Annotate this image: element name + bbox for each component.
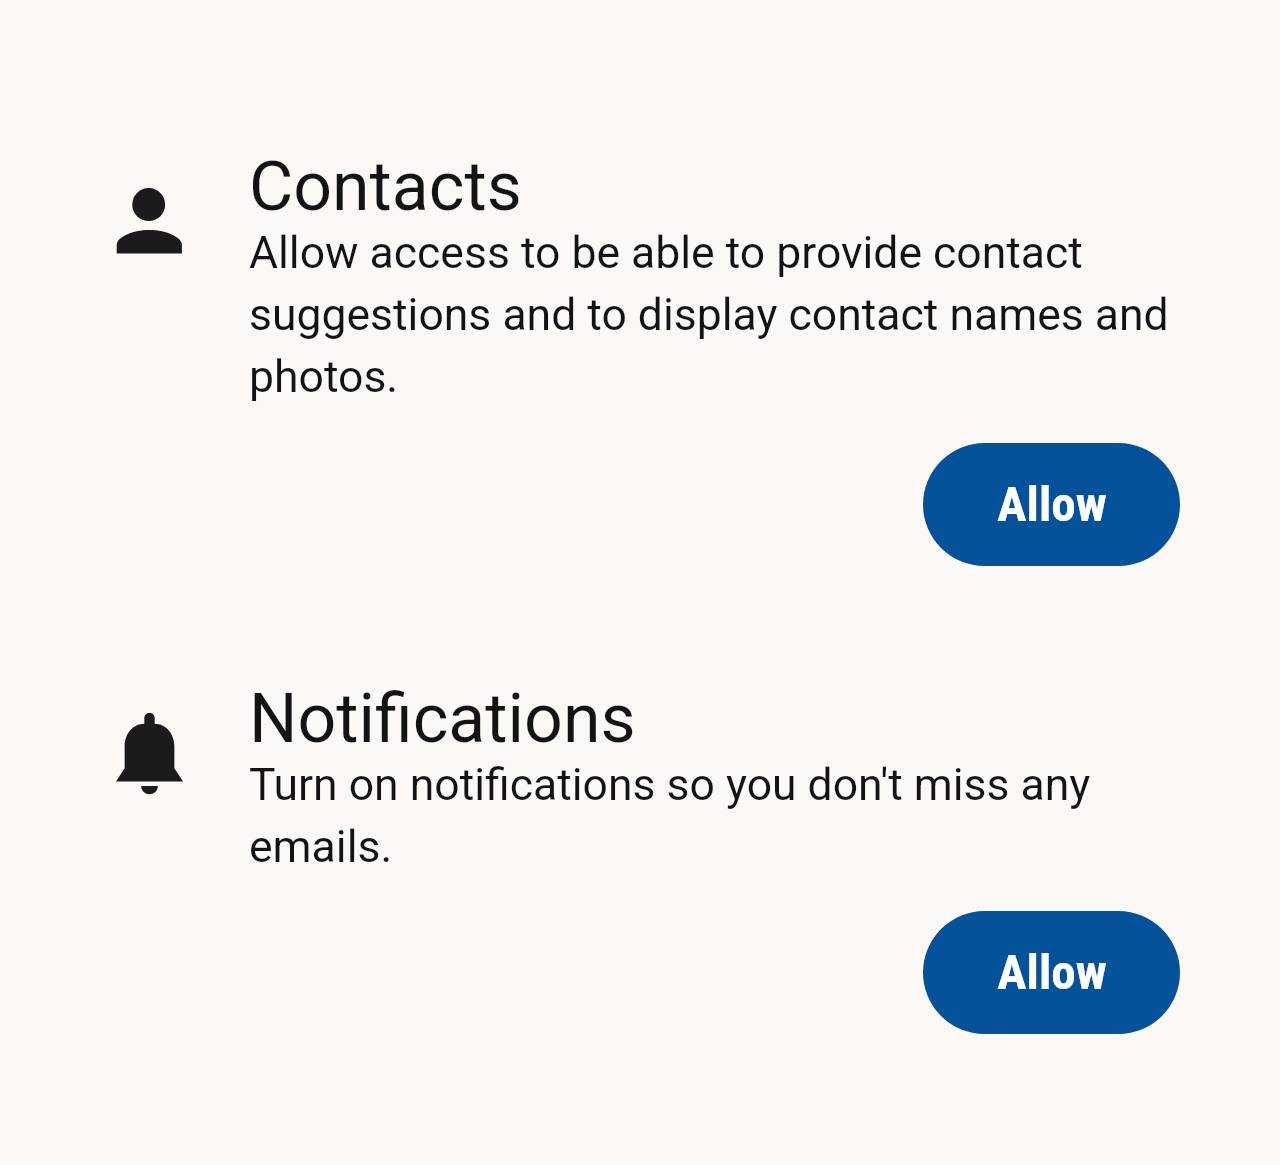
staticText: Allow	[997, 476, 1107, 533]
staticText: Allow	[997, 944, 1107, 1001]
other: Notifications permission	[116, 713, 183, 794]
other: Contacts permission	[116, 188, 183, 254]
staticText: Turn on notifications so you don't miss …	[249, 759, 1179, 875]
staticText: Contacts	[249, 147, 522, 227]
staticText: Allow access to be able to provide conta…	[249, 227, 1179, 405]
staticText: Notifications	[249, 679, 636, 759]
button[interactable]: Allow	[923, 443, 1180, 566]
button[interactable]: Allow	[923, 911, 1180, 1034]
